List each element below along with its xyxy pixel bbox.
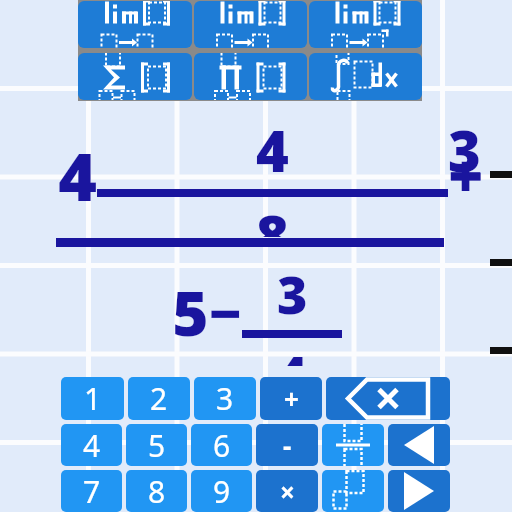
staticText: 8	[148, 471, 166, 512]
button[interactable]: 9	[191, 470, 252, 512]
button[interactable]	[78, 53, 192, 100]
staticText: +	[284, 381, 299, 416]
button[interactable]: +	[260, 377, 322, 420]
staticText: 5	[172, 270, 209, 354]
button[interactable]: Left	[388, 424, 450, 466]
staticText: 5	[148, 425, 166, 466]
button[interactable]: 1	[61, 377, 124, 420]
staticText: ×	[280, 474, 295, 509]
button[interactable]: 2	[128, 377, 190, 420]
button[interactable]	[309, 1, 422, 48]
staticText: 1	[84, 378, 102, 419]
staticText: 2	[150, 378, 168, 419]
button[interactable]: 7	[61, 470, 122, 512]
button[interactable]: Right	[388, 470, 450, 512]
button[interactable]: 8	[126, 470, 187, 512]
button[interactable]: ×	[256, 470, 318, 512]
staticText: -	[283, 428, 292, 463]
staticText: 3	[277, 258, 308, 329]
button[interactable]	[78, 1, 192, 48]
button[interactable]: Fraction	[322, 424, 384, 466]
button[interactable]: Backspace	[326, 377, 450, 420]
button[interactable]: 4	[61, 424, 122, 466]
staticText: 3	[216, 378, 234, 419]
staticText: 9	[213, 471, 231, 512]
button[interactable]	[194, 1, 307, 48]
button[interactable]: 5	[126, 424, 187, 466]
staticText: 6	[213, 425, 231, 466]
button[interactable]	[309, 53, 422, 100]
staticText: 4	[277, 338, 308, 366]
staticText: 4	[83, 425, 101, 466]
button[interactable]	[194, 53, 307, 100]
button[interactable]: 6	[191, 424, 252, 466]
staticText: 7	[83, 471, 101, 512]
staticText: 8	[256, 197, 289, 237]
staticText: 4	[58, 130, 97, 220]
staticText: −	[209, 274, 242, 350]
button[interactable]: 3	[194, 377, 256, 420]
button[interactable]: Power	[322, 470, 384, 512]
staticText: 4	[256, 112, 289, 188]
button[interactable]: -	[256, 424, 318, 466]
